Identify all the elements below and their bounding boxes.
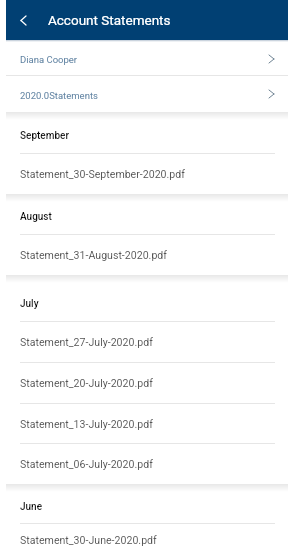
staticText: Diana Cooper: [20, 54, 269, 65]
button[interactable]: Statement_20-July-2020.pdf: [6, 363, 288, 403]
button[interactable]: Statement_30-September-2020.pdf: [6, 154, 288, 194]
staticText: August: [20, 211, 52, 223]
button[interactable]: 2020.0Statements: [6, 76, 288, 112]
button[interactable]: Statement_31-August-2020.pdf: [6, 235, 288, 275]
staticText: Statement_13-July-2020.pdf: [20, 418, 153, 430]
staticText: Account Statements: [48, 12, 171, 28]
staticText: Statement_30-September-2020.pdf: [20, 168, 185, 180]
staticText: June: [20, 501, 43, 513]
staticText: Statement_06-July-2020.pdf: [20, 458, 153, 470]
button[interactable]: Diana Cooper: [6, 42, 288, 75]
button[interactable]: Statement_13-July-2020.pdf: [6, 404, 288, 443]
staticText: 2020.0Statements: [20, 90, 269, 101]
button[interactable]: Statement_30-June-2020.pdf: [6, 524, 288, 556]
button[interactable]: Back: [6, 0, 41, 40]
staticText: Statement_27-July-2020.pdf: [20, 336, 153, 348]
button[interactable]: Statement_06-July-2020.pdf: [6, 444, 288, 484]
staticText: Statement_30-June-2020.pdf: [20, 534, 157, 546]
staticText: Statement_20-July-2020.pdf: [20, 377, 153, 389]
staticText: September: [20, 130, 69, 142]
staticText: July: [20, 298, 39, 310]
button[interactable]: Statement_27-July-2020.pdf: [6, 322, 288, 362]
staticText: Statement_31-August-2020.pdf: [20, 249, 167, 261]
